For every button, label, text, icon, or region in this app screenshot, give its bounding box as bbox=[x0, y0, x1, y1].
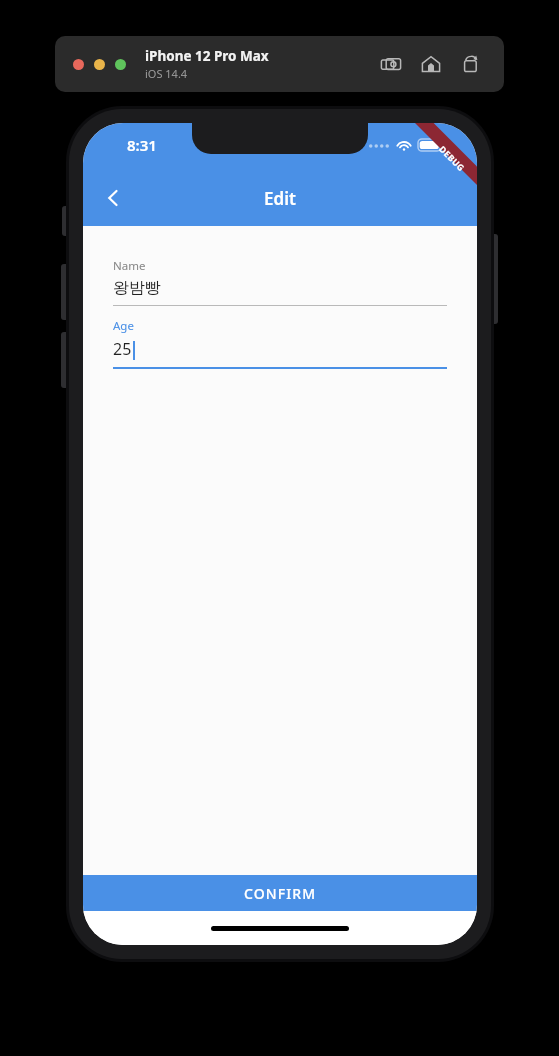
button[interactable]: Screenshot bbox=[378, 51, 404, 77]
staticText: iOS 14.4 bbox=[145, 66, 188, 81]
button[interactable]: Home bbox=[418, 51, 444, 77]
staticText: 8:31 bbox=[127, 135, 157, 155]
button[interactable] bbox=[94, 59, 105, 70]
staticText: 25 bbox=[113, 338, 132, 360]
button[interactable]: CONFIRM bbox=[83, 875, 477, 911]
staticText: CONFIRM bbox=[244, 884, 317, 903]
staticText: iPhone 12 Pro Max bbox=[145, 47, 269, 65]
button[interactable]: Rotate bbox=[458, 51, 484, 77]
button[interactable] bbox=[73, 59, 84, 70]
button[interactable]: Back bbox=[89, 174, 137, 222]
button[interactable] bbox=[115, 59, 126, 70]
staticText: Name bbox=[113, 258, 146, 274]
button[interactable]: Name bbox=[113, 254, 447, 306]
staticText: Edit bbox=[264, 187, 296, 210]
staticText: 왕밤빵 bbox=[113, 278, 161, 298]
staticText: DEBUG bbox=[436, 143, 467, 174]
button[interactable]: Age bbox=[113, 314, 447, 369]
staticText: Age bbox=[113, 318, 134, 334]
